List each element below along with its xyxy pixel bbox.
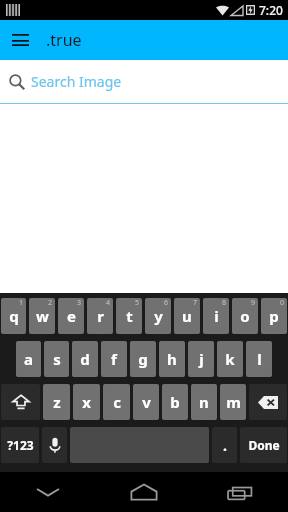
staticText: ?123 xyxy=(7,437,34,453)
staticText: 2 xyxy=(48,298,53,308)
button[interactable]: . xyxy=(212,427,237,463)
button[interactable]: k xyxy=(217,341,243,377)
staticText: c xyxy=(113,392,121,412)
staticText: h xyxy=(167,349,177,369)
button[interactable]: e xyxy=(58,298,84,334)
staticText: m xyxy=(226,392,241,412)
button[interactable]: Voice input xyxy=(42,427,67,463)
button[interactable]: p xyxy=(261,298,287,334)
button[interactable]: s xyxy=(44,341,69,377)
button[interactable]: Open navigation menu xyxy=(0,20,40,60)
staticText: 6 xyxy=(164,298,169,308)
staticText: 9 xyxy=(251,298,256,308)
staticText: f xyxy=(111,349,117,369)
staticText: p xyxy=(269,306,279,326)
button[interactable]: i xyxy=(203,298,229,334)
button[interactable]: y xyxy=(145,298,171,334)
button[interactable]: t xyxy=(116,298,142,334)
button[interactable]: a xyxy=(16,341,41,377)
staticText: 7:20 xyxy=(259,2,283,18)
button[interactable]: x xyxy=(73,384,100,420)
staticText: . xyxy=(223,436,227,455)
staticText: j xyxy=(199,349,204,369)
button[interactable]: w xyxy=(29,298,55,334)
button[interactable]: Home xyxy=(96,472,192,512)
button[interactable]: q xyxy=(1,298,26,334)
button[interactable]: d xyxy=(72,341,98,377)
button[interactable]: z xyxy=(43,384,70,420)
staticText: b xyxy=(170,392,180,412)
staticText: 0 xyxy=(280,298,285,308)
staticText: 7 xyxy=(193,298,198,308)
staticText: q xyxy=(9,306,19,326)
staticText: .true xyxy=(46,29,82,51)
button[interactable]: Shift xyxy=(1,384,40,420)
button[interactable]: ?123 xyxy=(1,427,39,463)
button[interactable]: l xyxy=(246,341,272,377)
staticText: k xyxy=(225,349,235,369)
staticText: z xyxy=(53,392,61,412)
staticText: s xyxy=(53,349,61,369)
button[interactable]: o xyxy=(232,298,258,334)
button[interactable]: v xyxy=(133,384,159,420)
button[interactable]: j xyxy=(188,341,214,377)
button[interactable]: n xyxy=(191,384,217,420)
staticText: a xyxy=(24,349,33,369)
staticText: d xyxy=(80,349,90,369)
button[interactable]: Backspace xyxy=(249,384,287,420)
staticText: o xyxy=(240,306,250,326)
button[interactable]: h xyxy=(159,341,185,377)
staticText: Search Image xyxy=(31,72,122,91)
staticText: w xyxy=(36,306,49,326)
staticText: y xyxy=(154,306,163,326)
button[interactable]: Recent apps xyxy=(192,472,288,512)
staticText: e xyxy=(67,306,76,326)
button[interactable]: g xyxy=(130,341,156,377)
button[interactable]: b xyxy=(162,384,188,420)
staticText: x xyxy=(82,392,91,412)
button[interactable]: c xyxy=(103,384,130,420)
staticText: t xyxy=(126,306,133,326)
staticText: n xyxy=(199,392,209,412)
staticText: 4 xyxy=(106,298,111,308)
staticText: r xyxy=(97,306,104,326)
button[interactable]: Done xyxy=(240,427,287,463)
staticText: 3 xyxy=(77,298,82,308)
staticText: l xyxy=(257,349,262,369)
staticText: i xyxy=(214,306,219,326)
button[interactable]: m xyxy=(220,384,246,420)
button[interactable]: Search Image xyxy=(0,60,288,103)
button[interactable]: u xyxy=(174,298,200,334)
staticText: v xyxy=(142,392,151,412)
staticText: 5 xyxy=(135,298,140,308)
staticText: Done xyxy=(248,437,280,453)
staticText: u xyxy=(182,306,192,326)
staticText: 8 xyxy=(222,298,227,308)
button[interactable]: f xyxy=(101,341,127,377)
button[interactable]: Hide keyboard xyxy=(0,472,96,512)
staticText: 1 xyxy=(19,298,24,308)
staticText: g xyxy=(138,349,148,369)
button[interactable]: r xyxy=(87,298,113,334)
